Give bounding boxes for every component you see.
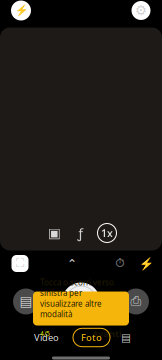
button[interactable]: Scene optimizer — [45, 224, 63, 242]
button[interactable]: Zoom 1x — [97, 223, 116, 242]
staticText: ⌃ — [67, 257, 77, 270]
staticText: 4/5 — [40, 329, 50, 338]
button[interactable]: Aperture — [73, 224, 87, 242]
button[interactable]: More modes — [118, 330, 134, 344]
staticText: ⚡ — [138, 257, 153, 270]
button[interactable]: Flash off — [136, 251, 156, 275]
button[interactable]: Scan — [6, 251, 34, 275]
button[interactable]: Gallery — [6, 279, 46, 323]
staticText: ▣ — [48, 225, 61, 240]
button[interactable]: Switch camera — [116, 279, 156, 323]
button[interactable]: Settings — [126, 0, 156, 25]
staticText: visualizzare altre modalità — [40, 298, 102, 319]
staticText: ⎙ — [130, 295, 141, 308]
staticText: Avanti — [92, 328, 122, 340]
staticText: Tocca o scorri verso sinistra per — [40, 277, 114, 298]
staticText: ⚡ — [14, 4, 27, 17]
button[interactable]: Avanti — [92, 328, 122, 340]
staticText: Video — [34, 331, 59, 344]
staticText: ⛶ — [16, 258, 24, 269]
staticText: Foto — [81, 331, 102, 344]
staticText: ⚙ — [135, 3, 147, 18]
staticText: ▤ — [121, 331, 131, 343]
button[interactable]: Foto — [73, 328, 110, 347]
button[interactable]: Flash — [6, 0, 36, 25]
staticText: ▤ — [19, 294, 32, 309]
button[interactable]: More options — [58, 251, 86, 275]
staticText: ⏱ — [115, 258, 124, 269]
button[interactable]: Video — [28, 328, 65, 347]
staticText: ƒ — [77, 224, 83, 242]
button[interactable]: Shutter — [58, 278, 104, 324]
button[interactable]: Timer off — [110, 251, 130, 275]
staticText: 1x — [101, 226, 113, 240]
